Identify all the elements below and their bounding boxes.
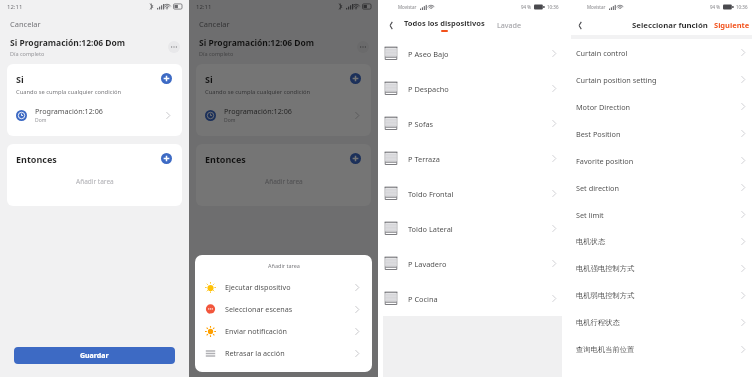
staticText: 10:36 (736, 4, 748, 10)
staticText: Entonces (205, 153, 246, 165)
button[interactable]: 电机强电控制方式 (567, 255, 756, 282)
button[interactable]: Favorite position (567, 147, 756, 174)
button[interactable]: Set limit (567, 201, 756, 228)
button[interactable]: 电机弱电控制方式 (567, 282, 756, 309)
staticText: Todos los dispositivos (404, 18, 485, 28)
button[interactable]: Todos los dispositivos (404, 18, 485, 32)
staticText: 94 % (521, 4, 532, 10)
staticText: Motor Direction (576, 102, 739, 112)
staticText: Best Position (576, 129, 739, 139)
button[interactable]: P Sofas (378, 106, 567, 141)
button[interactable]: Programación:12:06 (205, 106, 362, 124)
staticText: P Lavadero (408, 259, 550, 269)
staticText: Enviar notificación (225, 326, 353, 336)
staticText: Cuando se cumpla cualquier condición (205, 88, 311, 96)
button[interactable]: Añadir condición (349, 72, 362, 85)
staticText: Seleccionar función (632, 20, 708, 31)
button[interactable]: Programación:12:06 (16, 106, 173, 124)
button[interactable]: Guardar (203, 347, 364, 364)
staticText: Cancelar (10, 19, 41, 29)
button[interactable]: Set direction (567, 174, 756, 201)
staticText: P Aseo Bajo (408, 49, 550, 59)
staticText: Toldo Frontal (408, 189, 550, 199)
button[interactable]: P Despacho (378, 71, 567, 106)
staticText: Día completo (199, 50, 234, 57)
button[interactable]: 电机状态 (567, 228, 756, 255)
staticText: Si Programación:12:06 Dom (199, 37, 315, 49)
staticText: Añadir tarea (265, 177, 303, 186)
staticText: Dom (35, 117, 47, 124)
button[interactable]: Más opciones (357, 41, 369, 53)
button[interactable]: Retrasar la acción (195, 342, 372, 364)
staticText: Guardar (269, 351, 298, 361)
button[interactable]: Curtain control (567, 39, 756, 66)
staticText: P Sofas (408, 119, 550, 129)
staticText: Retrasar la acción (225, 348, 353, 358)
staticText: Curtain position setting (576, 75, 739, 85)
staticText: Toldo Lateral (408, 224, 550, 234)
button[interactable]: Añadir condición (160, 72, 173, 85)
staticText: Añadir tarea (268, 262, 300, 269)
button[interactable]: Best Position (567, 120, 756, 147)
staticText: Set limit (576, 210, 739, 220)
staticText: Favorite position (576, 156, 739, 166)
staticText: 12:11 (196, 3, 212, 11)
staticText: 查询电机当前位置 (576, 345, 739, 354)
staticText: Movistar (587, 4, 606, 10)
button[interactable]: Cancelar (189, 17, 378, 33)
staticText: Añadir tarea (76, 177, 114, 186)
button[interactable]: Más opciones (168, 41, 180, 53)
button[interactable]: Atrás (384, 18, 398, 32)
staticText: P Despacho (408, 84, 550, 94)
button[interactable]: P Cocina (378, 281, 567, 316)
staticText: Cuando se cumpla cualquier condición (16, 88, 122, 96)
staticText: 电机状态 (576, 237, 739, 246)
button[interactable]: Curtain position setting (567, 66, 756, 93)
button[interactable]: Motor Direction (567, 93, 756, 120)
staticText: Seleccionar escenas (225, 304, 353, 314)
staticText: Si Programación:12:06 Dom (10, 37, 126, 49)
staticText: 电机行程状态 (576, 318, 739, 327)
staticText: 10:36 (547, 4, 559, 10)
staticText: Programación:12:06 (35, 106, 103, 116)
staticText: Entonces (16, 153, 57, 165)
button[interactable]: P Aseo Bajo (378, 36, 567, 71)
staticText: Si (205, 73, 213, 85)
button[interactable]: Siguiente (714, 20, 750, 30)
staticText: Si (16, 73, 24, 85)
staticText: Curtain control (576, 48, 739, 58)
button[interactable]: Ejecutar dispositivo (195, 276, 372, 298)
staticText: Día completo (10, 50, 45, 57)
button[interactable]: Toldo Frontal (378, 176, 567, 211)
button[interactable]: Seleccionar escenas (195, 298, 372, 320)
button[interactable]: Guardar (14, 347, 175, 364)
staticText: Cancelar (199, 19, 230, 29)
staticText: Ejecutar dispositivo (225, 282, 353, 292)
staticText: P Terraza (408, 154, 550, 164)
button[interactable]: Enviar notificación (195, 320, 372, 342)
staticText: Set direction (576, 183, 739, 193)
staticText: P Cocina (408, 294, 550, 304)
button[interactable]: Lavade (497, 20, 521, 30)
button[interactable]: Atrás (573, 18, 587, 32)
staticText: 12:11 (7, 3, 23, 11)
button[interactable]: Añadir acción (349, 152, 362, 165)
staticText: 电机弱电控制方式 (576, 291, 739, 300)
button[interactable]: P Terraza (378, 141, 567, 176)
button[interactable]: 电机行程状态 (567, 309, 756, 336)
staticText: Programación:12:06 (224, 106, 292, 116)
staticText: Dom (224, 117, 236, 124)
button[interactable]: Añadir acción (160, 152, 173, 165)
staticText: Guardar (80, 351, 109, 361)
staticText: 电机强电控制方式 (576, 264, 739, 273)
button[interactable]: 查询电机当前位置 (567, 336, 756, 363)
staticText: 94 % (710, 4, 721, 10)
button[interactable]: P Lavadero (378, 246, 567, 281)
staticText: Movistar (398, 4, 417, 10)
button[interactable]: Cancelar (0, 17, 189, 33)
button[interactable]: Toldo Lateral (378, 211, 567, 246)
